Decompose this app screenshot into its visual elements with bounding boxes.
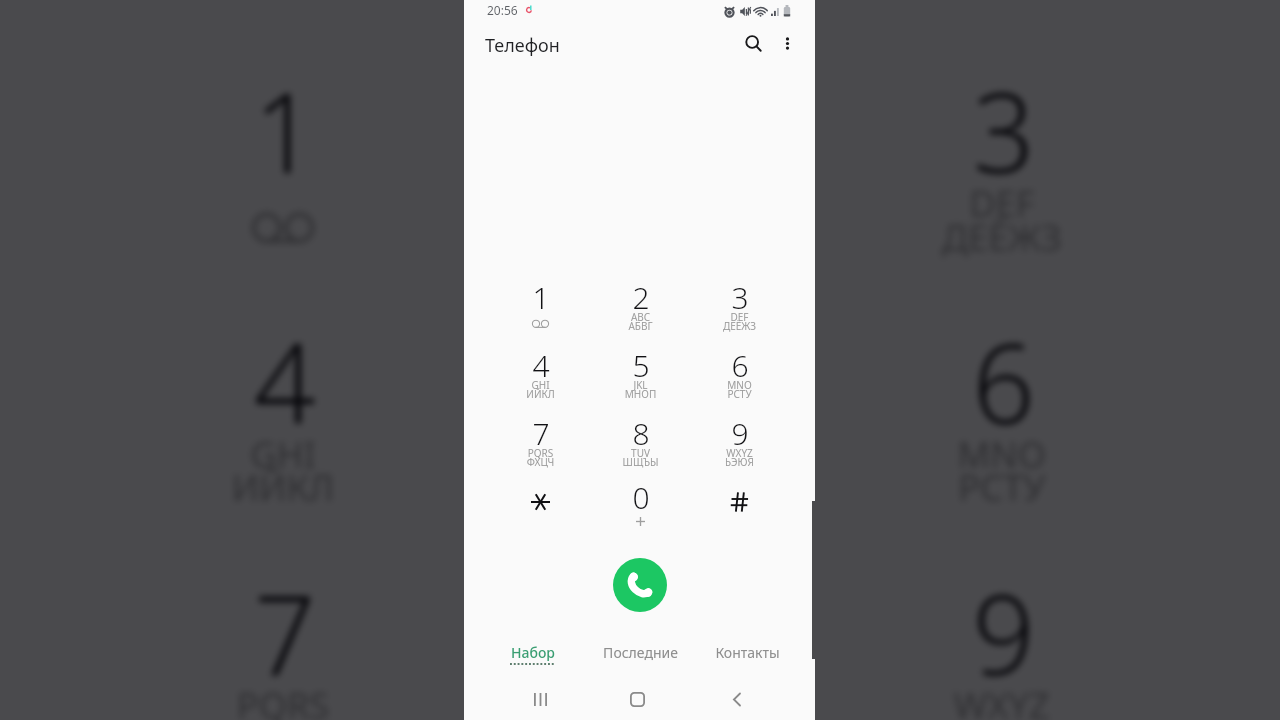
- staticText: WXYZ ЬЭЮЯ: [690, 446, 789, 469]
- staticText: 4: [532, 345, 550, 386]
- button[interactable]: Back: [712, 679, 760, 720]
- button[interactable]: 8: [591, 413, 690, 475]
- button[interactable]: Star: [491, 477, 590, 539]
- button[interactable]: 6: [823, 306, 1181, 534]
- staticText: GHI ИЙКЛ: [491, 378, 590, 401]
- button[interactable]: 9: [690, 413, 789, 475]
- staticText: 20:56: [487, 2, 518, 18]
- staticText: 6: [731, 345, 749, 386]
- staticText: 9: [971, 557, 1036, 708]
- button[interactable]: Call: [613, 558, 667, 612]
- button[interactable]: 1: [104, 55, 462, 284]
- staticText: 7: [532, 413, 550, 454]
- staticText: ABC АБВГ: [465, 177, 823, 262]
- button[interactable]: 1: [491, 277, 590, 339]
- button[interactable]: 5: [465, 306, 823, 534]
- staticText: ABC АБВГ: [591, 310, 690, 333]
- staticText: JKL МНОП: [591, 378, 690, 401]
- button[interactable]: 3: [690, 277, 789, 339]
- staticText: DEF ДЕЁЖЗ: [823, 177, 1181, 262]
- staticText: 0: [632, 477, 650, 518]
- staticText: TUV ШЩЪЫ: [465, 678, 823, 720]
- staticText: WXYZ ЬЭЮЯ: [823, 678, 1181, 720]
- staticText: JKL МНОП: [465, 428, 823, 512]
- staticText: DEF ДЕЁЖЗ: [690, 310, 789, 333]
- button[interactable]: 7: [491, 413, 590, 475]
- staticText: 9: [731, 413, 749, 454]
- staticText: 5: [613, 306, 678, 457]
- staticText: 8: [632, 413, 650, 454]
- staticText: 1: [252, 55, 317, 206]
- staticText: 2: [632, 277, 650, 318]
- staticText: Контакты: [715, 643, 780, 662]
- button[interactable]: 3: [823, 55, 1181, 284]
- staticText: Последние: [603, 643, 678, 662]
- staticText: 6: [971, 306, 1036, 457]
- button[interactable]: 9: [823, 557, 1181, 720]
- staticText: 7: [252, 557, 317, 708]
- button[interactable]: Search: [738, 28, 768, 58]
- button[interactable]: Набор: [480, 643, 585, 673]
- button[interactable]: 2: [591, 277, 690, 339]
- button[interactable]: Контакты: [695, 643, 800, 673]
- button[interactable]: 7: [104, 557, 462, 720]
- button[interactable]: 4: [491, 345, 590, 407]
- staticText: PQRS ФХЦЧ: [104, 678, 462, 720]
- button[interactable]: 5: [591, 345, 690, 407]
- button[interactable]: 0: [591, 477, 690, 539]
- staticText: 8: [613, 557, 678, 708]
- button[interactable]: 2: [465, 55, 823, 284]
- staticText: 1: [532, 277, 550, 318]
- button[interactable]: Последние: [588, 643, 693, 673]
- staticText: 3: [731, 277, 749, 318]
- button[interactable]: More options: [772, 28, 802, 58]
- staticText: Телефон: [485, 33, 560, 58]
- staticText: Набор: [511, 643, 555, 662]
- button[interactable]: 8: [465, 557, 823, 720]
- staticText: PQRS ФХЦЧ: [491, 446, 590, 469]
- button[interactable]: Recents: [516, 679, 564, 720]
- staticText: 5: [632, 345, 650, 386]
- staticText: TUV ШЩЪЫ: [591, 446, 690, 469]
- button[interactable]: 4: [104, 306, 462, 534]
- button[interactable]: Home: [614, 679, 662, 720]
- button[interactable]: 6: [690, 345, 789, 407]
- staticText: MNO РСТУ: [690, 378, 789, 401]
- staticText: 3: [971, 55, 1036, 206]
- button[interactable]: Pound: [690, 477, 789, 539]
- staticText: 4: [252, 306, 317, 457]
